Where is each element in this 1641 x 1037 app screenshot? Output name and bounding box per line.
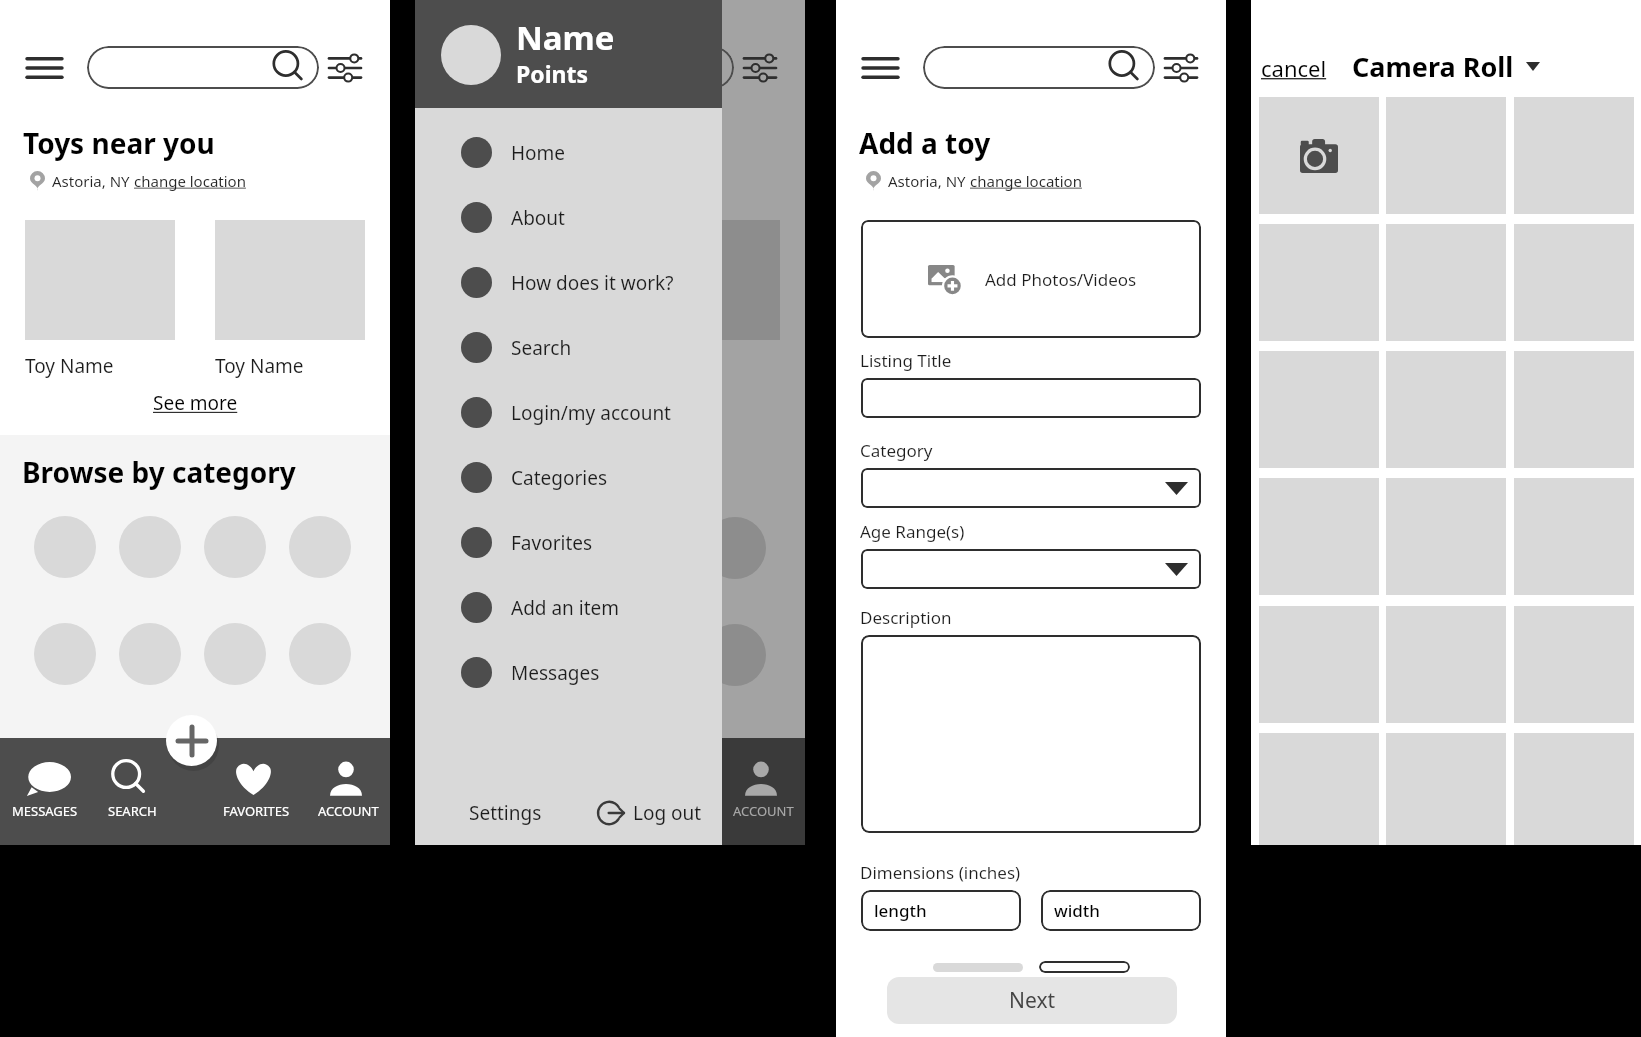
staticText: Points [516,58,589,89]
staticText: Browse by category [22,453,296,491]
button[interactable]: Category [119,623,181,685]
button[interactable]: Login/my account [415,380,722,445]
button[interactable]: Category [289,623,351,685]
staticText: Favorites [511,530,593,556]
button[interactable]: Categories [415,445,722,510]
staticText: Toy Name [25,353,114,379]
button[interactable]: change location [134,169,246,193]
staticText: Listing Title [860,349,952,372]
staticText: About [511,205,565,231]
button[interactable]: How does it work? [415,250,722,315]
button[interactable]: Search [415,315,722,380]
staticText: How does it work? [511,270,674,296]
button[interactable]: Description field [861,635,1201,833]
button[interactable]: change location [970,169,1082,193]
button[interactable]: Favorites [415,510,722,575]
button[interactable]: About [415,185,722,250]
button[interactable]: MESSAGES [415,738,508,845]
button[interactable]: cancel [1261,53,1327,83]
staticText: Description [860,606,952,629]
staticText: Name [516,15,615,60]
staticText: Astoria, NY [52,171,134,191]
staticText: MESSAGES [12,802,78,820]
staticText: Category [860,439,933,462]
button[interactable]: Category [204,623,266,685]
staticText: width [1054,899,1101,922]
button[interactable]: Messages [415,640,722,705]
button[interactable]: SEARCH [84,738,180,845]
button[interactable]: Menu [20,48,69,88]
button[interactable]: ACCOUNT [300,738,390,845]
staticText: SEARCH [523,802,572,820]
button[interactable]: Home [415,120,722,185]
staticText: FAVORITES [223,802,290,820]
button[interactable]: SEARCH [499,738,595,845]
staticText: Add Photos/Videos [985,268,1137,291]
staticText: Log out [633,800,702,826]
button[interactable]: Category [204,516,266,578]
button[interactable]: width [1041,890,1201,931]
button[interactable]: Category [34,516,96,578]
staticText: Age Range(s) [860,520,965,543]
button[interactable]: Settings [455,795,555,831]
button[interactable]: Add Photos/Videos [861,220,1201,338]
button[interactable]: Add item [166,715,217,766]
staticText: Home [511,140,566,166]
button[interactable]: Search [923,46,1155,89]
staticText: change location [970,171,1082,191]
staticText: Search [511,335,572,361]
button[interactable]: Open dropdown [861,468,1201,508]
staticText: cancel [1261,53,1327,83]
button[interactable]: Next [887,977,1177,1024]
staticText: Dimensions (inches) [860,861,1021,884]
button[interactable]: Menu [856,48,905,88]
button[interactable]: MESSAGES [0,738,93,845]
button[interactable]: Filter [1160,48,1202,88]
button[interactable]: Add an item [415,575,722,640]
staticText: Toys near you [23,124,215,162]
button[interactable]: FAVORITES [623,738,719,845]
staticText: FAVORITES [638,802,705,820]
button[interactable]: length [861,890,1021,931]
button[interactable]: FAVORITES [208,738,304,845]
button[interactable]: Log out [596,795,704,831]
button[interactable]: Category [119,516,181,578]
button[interactable]: See more [153,390,238,416]
button[interactable]: Category [289,516,351,578]
button[interactable]: Open dropdown [861,549,1201,589]
staticText: Astoria, NY [888,171,970,191]
staticText: Login/my account [511,400,671,426]
button[interactable]: Filter [324,48,366,88]
staticText: Messages [511,660,600,686]
button[interactable]: Search [87,46,319,89]
button[interactable]: ACCOUNT [715,738,805,845]
button[interactable]: Choose album [1523,58,1543,74]
staticText: Toy Name [215,353,304,379]
button[interactable]: Photo [1259,97,1379,214]
staticText: SEARCH [108,802,157,820]
staticText: Camera Roll [1352,48,1514,85]
staticText: Next [1009,986,1056,1015]
button[interactable]: Category [34,623,96,685]
staticText: Settings [469,800,542,826]
button[interactable]: Listing Title field [861,378,1201,418]
